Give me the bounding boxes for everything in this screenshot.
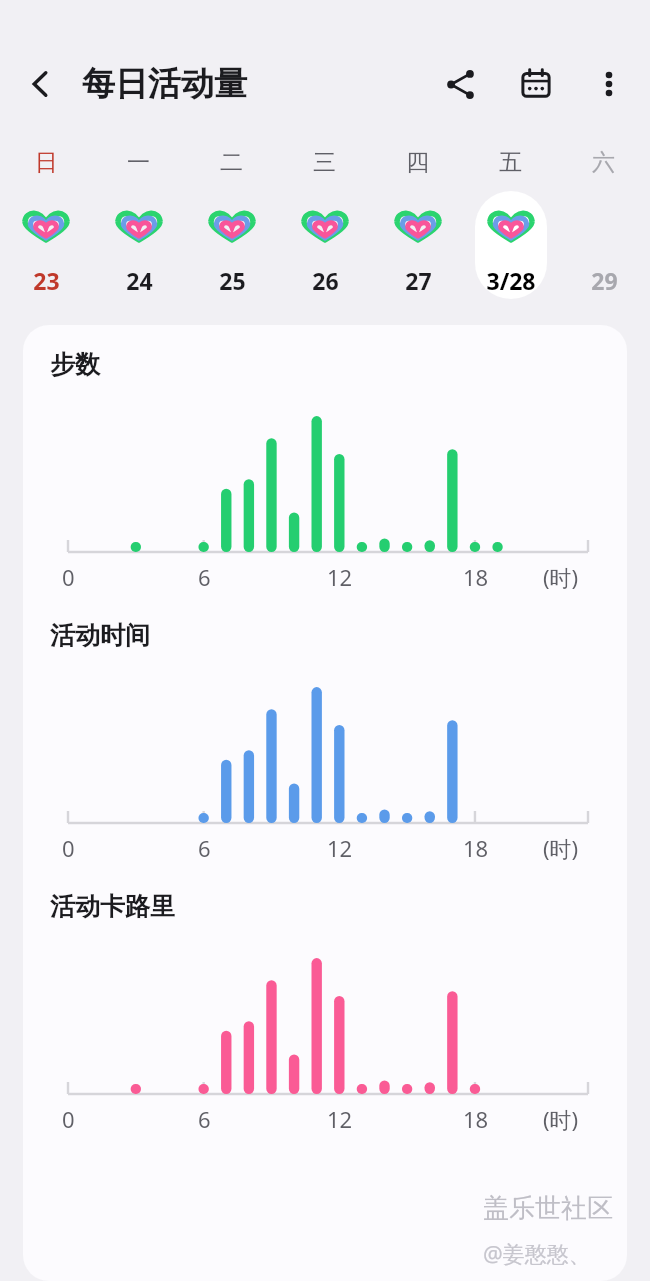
staticText: 18 <box>463 562 489 592</box>
staticText: 29 <box>591 265 618 296</box>
button[interactable]: Back <box>0 42 82 126</box>
staticText: @姜憨憨、 <box>483 1238 591 1268</box>
staticText: 6 <box>198 833 211 863</box>
staticText: 活动时间 <box>50 620 150 651</box>
staticText: 12 <box>327 833 353 863</box>
staticText: 23 <box>33 265 60 296</box>
staticText: 6 <box>198 562 211 592</box>
staticText: 0 <box>62 562 75 592</box>
staticText: (时) <box>543 1104 579 1134</box>
staticText: 五 <box>499 148 522 177</box>
staticText: (时) <box>543 562 579 592</box>
staticText: 6 <box>198 1104 211 1134</box>
staticText: 26 <box>312 265 339 296</box>
button[interactable]: Calendar <box>498 46 574 122</box>
button[interactable]: 五 <box>464 148 557 299</box>
button[interactable]: 日 <box>0 148 92 299</box>
staticText: 日 <box>35 148 58 177</box>
button[interactable]: Share <box>422 46 498 122</box>
staticText: 25 <box>219 265 246 296</box>
staticText: 0 <box>62 833 75 863</box>
staticText: 18 <box>463 833 489 863</box>
button[interactable]: 四 <box>371 148 464 299</box>
staticText: 0 <box>62 1104 75 1134</box>
staticText: 三 <box>313 148 336 177</box>
staticText: 3/28 <box>486 265 536 296</box>
button[interactable]: 三 <box>278 148 371 299</box>
staticText: 六 <box>592 148 615 177</box>
button[interactable]: 一 <box>92 148 185 299</box>
button[interactable]: 二 <box>185 148 278 299</box>
staticText: 18 <box>463 1104 489 1134</box>
staticText: 盖乐世社区 <box>483 1192 613 1225</box>
staticText: 12 <box>327 562 353 592</box>
staticText: 四 <box>406 148 429 177</box>
staticText: 一 <box>127 148 150 177</box>
staticText: (时) <box>543 833 579 863</box>
staticText: 步数 <box>50 349 100 380</box>
staticText: 27 <box>405 265 432 296</box>
staticText: 12 <box>327 1104 353 1134</box>
button[interactable]: More options <box>574 49 644 119</box>
staticText: 活动卡路里 <box>50 891 175 922</box>
staticText: 每日活动量 <box>82 63 247 105</box>
staticText: 24 <box>126 265 153 296</box>
button[interactable]: 六 <box>557 148 650 299</box>
staticText: 二 <box>220 148 243 177</box>
